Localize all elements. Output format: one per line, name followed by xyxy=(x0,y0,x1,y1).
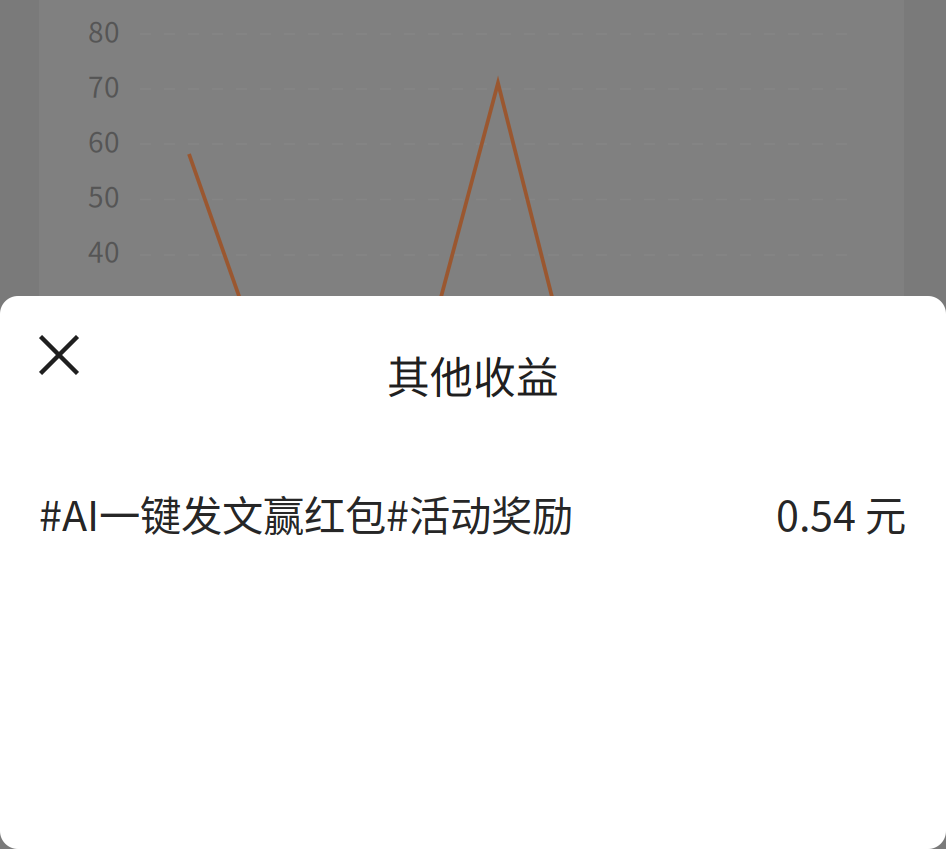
staticText: 0.54 元 xyxy=(776,483,906,543)
button[interactable]: 关闭 xyxy=(21,317,97,393)
staticText: #AI一键发文赢红包#活动奖励 xyxy=(39,483,573,543)
staticText: 80 xyxy=(88,10,120,51)
staticText: 70 xyxy=(88,65,120,106)
button[interactable]: #AI一键发文赢红包#活动奖励 xyxy=(0,468,946,558)
staticText: 50 xyxy=(88,175,120,216)
staticText: 60 xyxy=(88,120,120,161)
staticText: 其他收益 xyxy=(387,344,559,406)
staticText: 40 xyxy=(88,230,120,271)
